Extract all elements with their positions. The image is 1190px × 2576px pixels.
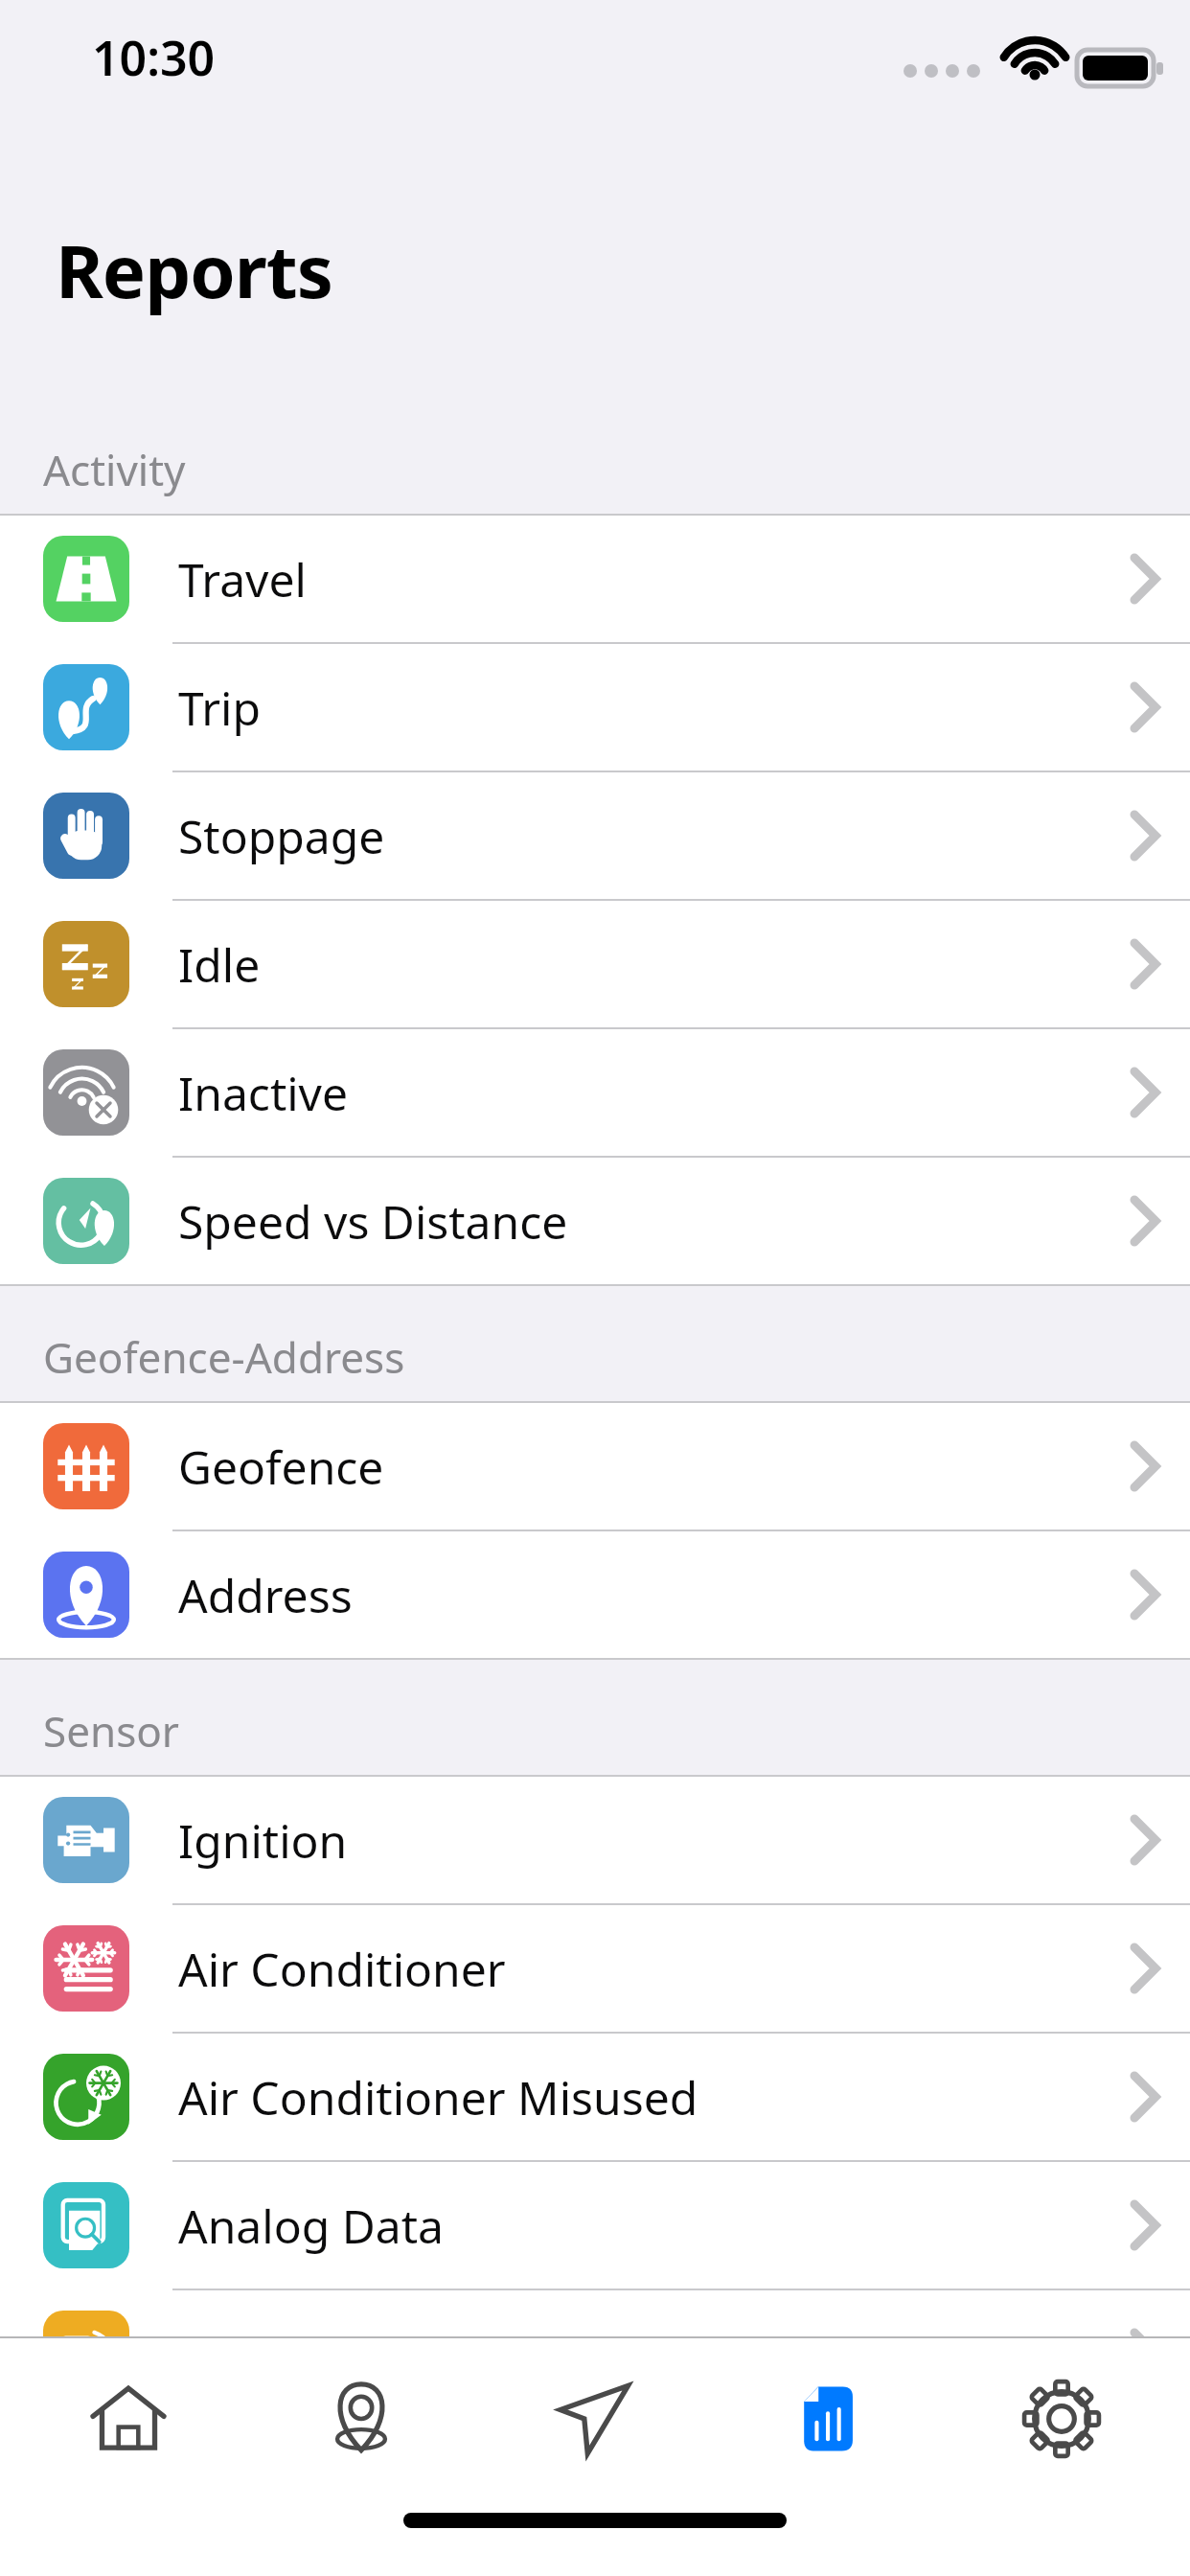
staticText: Travel — [178, 548, 1113, 610]
staticText: Ignition — [178, 1809, 1113, 1872]
button[interactable]: Settings — [956, 2338, 1167, 2499]
staticText: Stoppage — [178, 805, 1113, 867]
staticText: Geofence-Address — [43, 1328, 405, 1386]
staticText: Analog Data — [178, 2195, 1113, 2257]
staticText: Air Conditioner — [178, 1938, 1113, 2000]
button[interactable]: Navigate — [490, 2338, 700, 2499]
staticText: Activity — [43, 441, 186, 498]
staticText: Speed vs Distance — [178, 1190, 1113, 1253]
staticText: Trip — [178, 677, 1113, 739]
button[interactable]: Stoppage — [0, 772, 1190, 899]
staticText: Sensor — [43, 1702, 180, 1759]
staticText: Idle — [178, 933, 1113, 996]
button[interactable]: Air Conditioner Misused — [0, 2034, 1190, 2160]
button[interactable]: Ignition — [0, 1777, 1190, 1903]
button[interactable]: RFID Data — [0, 2290, 1190, 2417]
staticText: 10:30 — [92, 25, 216, 90]
button[interactable]: Address — [0, 1531, 1190, 1658]
staticText: Air Conditioner Misused — [178, 2066, 1113, 2128]
button[interactable]: Analog Data — [0, 2162, 1190, 2288]
staticText: Address — [178, 1564, 1113, 1626]
button[interactable]: Reports — [723, 2338, 934, 2499]
button[interactable]: Inactive — [0, 1029, 1190, 1156]
staticText: Inactive — [178, 1062, 1113, 1124]
button[interactable]: Places — [256, 2338, 467, 2499]
button[interactable]: Air Conditioner — [0, 1905, 1190, 2032]
button[interactable]: Idle — [0, 901, 1190, 1027]
button[interactable]: Travel — [0, 516, 1190, 642]
staticText: RFID Data — [178, 2323, 1113, 2385]
button[interactable]: Home — [23, 2338, 234, 2499]
button[interactable]: Trip — [0, 644, 1190, 770]
button[interactable]: Speed vs Distance — [0, 1158, 1190, 1284]
staticText: Geofence — [178, 1436, 1113, 1498]
staticText: Reports — [56, 220, 332, 320]
button[interactable]: Geofence — [0, 1403, 1190, 1529]
